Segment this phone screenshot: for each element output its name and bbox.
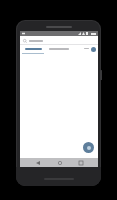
button[interactable] [47, 45, 71, 54]
button[interactable] [22, 45, 44, 54]
button[interactable]: Back [33, 158, 42, 167]
button[interactable]: Home [55, 158, 64, 167]
button[interactable]: Search [20, 36, 98, 45]
button[interactable]: Compose [83, 142, 94, 153]
button[interactable]: Account [91, 47, 96, 52]
other: Search [23, 39, 27, 43]
button[interactable]: Recent apps [76, 158, 85, 167]
